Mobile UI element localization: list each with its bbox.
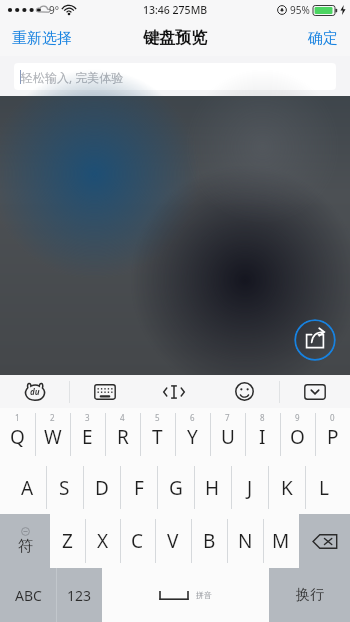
staticText: 轻松输入, 完美体验 — [21, 69, 124, 85]
button[interactable]: 2 — [35, 408, 70, 461]
staticText: 1 — [15, 412, 20, 423]
staticText: L — [319, 475, 329, 501]
button[interactable]: Share — [294, 319, 336, 361]
staticText: 7 — [225, 412, 230, 423]
staticText: 3 — [85, 412, 90, 423]
staticText: H — [205, 475, 220, 501]
button[interactable]: F — [120, 461, 157, 514]
button[interactable]: L — [305, 461, 342, 514]
staticText: R — [117, 424, 129, 450]
staticText: M — [272, 528, 290, 554]
staticText: I — [259, 424, 266, 450]
staticText: B — [203, 528, 216, 554]
button[interactable]: C — [120, 514, 155, 568]
staticText: A — [21, 475, 34, 501]
staticText: S — [59, 475, 70, 501]
button[interactable]: Z — [50, 514, 85, 568]
staticText: C — [131, 528, 144, 554]
staticText: Q — [10, 424, 25, 450]
button[interactable]: 7 — [210, 408, 245, 461]
staticText: V — [167, 528, 179, 554]
staticText: 9 — [295, 412, 300, 423]
button[interactable]: Backspace — [299, 514, 350, 568]
button[interactable]: Keyboard — [70, 375, 139, 408]
staticText: U — [221, 424, 235, 450]
button[interactable]: Hide keyboard — [280, 375, 350, 408]
button[interactable]: 0 — [315, 408, 350, 461]
staticText: 13:46 275MB — [143, 3, 208, 17]
staticText: 拼音 — [196, 590, 212, 600]
staticText: 符 — [18, 537, 33, 556]
button[interactable]: S — [46, 461, 83, 514]
button[interactable]: 123 — [57, 568, 102, 622]
button[interactable]: ABC — [0, 568, 56, 622]
button[interactable]: 3 — [70, 408, 105, 461]
staticText: 123 — [67, 586, 92, 605]
button[interactable]: 5 — [140, 408, 175, 461]
button[interactable]: 1 — [0, 408, 35, 461]
staticText: 5 — [155, 412, 160, 423]
staticText: 确定 — [308, 29, 338, 48]
button[interactable]: B — [191, 514, 227, 568]
staticText: 4 — [120, 412, 125, 423]
button[interactable]: 换行 — [269, 568, 350, 622]
button[interactable]: Emoji — [209, 375, 279, 408]
staticText: 换行 — [296, 586, 324, 604]
button[interactable]: D — [83, 461, 120, 514]
staticText: 95% — [290, 3, 310, 17]
staticText: G — [169, 475, 183, 501]
button[interactable]: V — [155, 514, 191, 568]
button[interactable]: Cursor — [139, 375, 209, 408]
staticText: 2 — [50, 412, 55, 423]
button[interactable]: M — [263, 514, 299, 568]
staticText: D — [95, 475, 109, 501]
staticText: X — [97, 528, 109, 554]
button[interactable]: K — [268, 461, 305, 514]
staticText: 6 — [190, 412, 195, 423]
staticText: K — [281, 475, 293, 501]
staticText: P — [327, 424, 339, 450]
staticText: F — [134, 475, 144, 501]
staticText: 键盘预览 — [143, 28, 207, 48]
staticText: N — [238, 528, 253, 554]
staticText: 0 — [330, 412, 335, 423]
button[interactable]: X — [85, 514, 120, 568]
button[interactable]: 轻松输入, 完美体验 — [14, 63, 336, 90]
button[interactable]: 确定 — [296, 23, 350, 54]
staticText: Y — [187, 424, 198, 450]
button[interactable]: G — [157, 461, 194, 514]
staticText: 8 — [260, 412, 265, 423]
button[interactable]: A — [8, 461, 46, 514]
staticText: 重新选择 — [12, 29, 72, 48]
staticText: J — [247, 475, 253, 501]
button[interactable]: Space — [102, 568, 269, 622]
staticText: W — [44, 424, 62, 450]
staticText: O — [290, 424, 305, 450]
button[interactable]: 9 — [280, 408, 315, 461]
button[interactable]: 6 — [175, 408, 210, 461]
button[interactable]: N — [227, 514, 263, 568]
button[interactable]: 重新选择 — [0, 23, 84, 54]
staticText: du — [30, 386, 40, 397]
button[interactable]: 符 — [0, 514, 50, 568]
staticText: Z — [62, 528, 73, 554]
button[interactable]: 8 — [245, 408, 280, 461]
staticText: ABC — [15, 586, 42, 605]
button[interactable]: Baidu input — [0, 375, 69, 408]
staticText: E — [82, 424, 93, 450]
button[interactable]: 4 — [105, 408, 140, 461]
button[interactable]: H — [194, 461, 231, 514]
staticText: T — [152, 424, 163, 450]
button[interactable]: J — [231, 461, 268, 514]
staticText: 9° — [49, 3, 59, 17]
